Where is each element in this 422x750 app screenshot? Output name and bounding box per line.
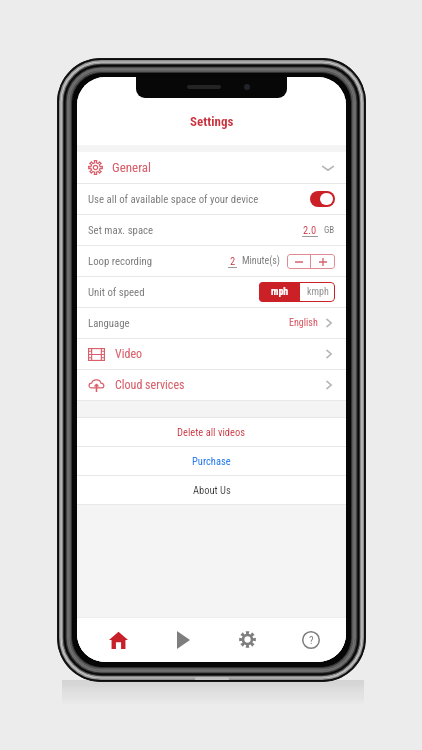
button[interactable]: Set max. space: [77, 215, 346, 245]
button[interactable]: [287, 254, 310, 269]
staticText: GB: [324, 225, 335, 236]
staticText: 2.0: [303, 224, 317, 236]
staticText: Unit of speed: [88, 286, 145, 299]
staticText: mph: [271, 286, 289, 298]
staticText: Video: [115, 347, 143, 361]
button[interactable]: Home: [86, 617, 151, 662]
button[interactable]: Purchase: [77, 447, 346, 475]
button[interactable]: Delete all videos: [77, 418, 346, 446]
staticText: Loop recording: [88, 255, 153, 268]
button[interactable]: Video: [77, 339, 346, 369]
staticText: Delete all videos: [177, 426, 246, 438]
staticText: Use all of available space of your devic…: [88, 193, 259, 206]
staticText: ?: [309, 634, 314, 647]
button[interactable]: Use all of available space of your devic…: [77, 184, 346, 214]
staticText: 2: [230, 255, 236, 267]
button[interactable]: Loop recording: [77, 246, 346, 276]
staticText: Language: [88, 317, 130, 330]
staticText: Cloud services: [115, 378, 185, 392]
staticText: Settings: [190, 114, 234, 129]
staticText: General: [112, 160, 152, 175]
button[interactable]: Language: [77, 308, 346, 338]
button[interactable]: kmph: [300, 282, 335, 302]
staticText: Purchase: [192, 455, 231, 467]
button[interactable]: Settings: [215, 617, 279, 662]
staticText: About Us: [193, 484, 231, 496]
button[interactable]: Play: [151, 617, 215, 662]
button[interactable]: Unit of speed: [77, 277, 346, 307]
staticText: kmph: [307, 286, 329, 298]
button[interactable]: [311, 254, 335, 269]
button[interactable]: Cloud services: [77, 370, 346, 400]
staticText: Minute(s): [242, 255, 281, 267]
button[interactable]: About Us: [77, 476, 346, 504]
staticText: Set max. space: [88, 224, 154, 237]
button[interactable]: General: [77, 152, 346, 183]
button[interactable]: mph: [259, 282, 300, 302]
staticText: English: [289, 317, 318, 329]
button[interactable]: Help: [279, 617, 343, 662]
